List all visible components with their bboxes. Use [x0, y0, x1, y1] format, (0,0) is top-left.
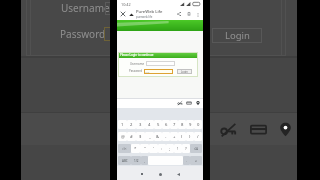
staticText: 2: [130, 122, 133, 128]
button[interactable]: ⌫: [190, 144, 202, 153]
button[interactable]: 6: [162, 120, 170, 129]
staticText: Username: [61, 1, 110, 15]
staticText: &: [156, 134, 160, 140]
button[interactable]: 0: [194, 120, 202, 129]
button[interactable]: Close: [119, 10, 127, 18]
staticText: @: [121, 134, 125, 140]
staticText: ABC: [122, 159, 128, 163]
staticText: Login: [181, 70, 188, 74]
button[interactable]: 3: [136, 120, 145, 129]
staticText: /: [197, 134, 199, 140]
staticText: pureweb.life: [136, 15, 153, 19]
button[interactable]: 4: [145, 120, 154, 129]
button[interactable]: Recents: [139, 171, 145, 177]
staticText: ⌫: [194, 147, 199, 150]
staticText: ): [189, 134, 191, 140]
button[interactable]: ?: [182, 144, 190, 153]
button[interactable]: Bookmark: [185, 10, 193, 18]
button[interactable]: 9: [186, 120, 194, 129]
staticText: 10:42: [121, 2, 131, 7]
button[interactable]: +: [170, 132, 178, 141]
button[interactable]: @: [118, 132, 127, 141]
button[interactable]: ': [149, 144, 158, 153]
staticText: Password: [129, 69, 143, 73]
staticText: PureWeb Life: [136, 9, 163, 15]
staticText: 4: [148, 122, 151, 128]
button[interactable]: ABC: [118, 156, 131, 165]
button[interactable]: &: [154, 132, 162, 141]
staticText: 1: [121, 122, 124, 128]
staticText: •••••: [145, 70, 150, 73]
staticText: ?: [185, 146, 187, 152]
button[interactable]: ;: [166, 144, 174, 153]
staticText: .: [186, 159, 187, 163]
button[interactable]: #: [127, 132, 136, 141]
button[interactable]: _: [145, 132, 154, 141]
staticText: Please Login to continue: [120, 53, 154, 57]
staticText: Username: [130, 62, 145, 66]
button[interactable]: ,: [141, 156, 148, 165]
staticText: 1/2: [134, 159, 139, 163]
button[interactable]: (: [178, 132, 186, 141]
staticText: ': [153, 146, 154, 152]
button[interactable]: Payment methods: [249, 120, 268, 139]
staticText: :: [161, 146, 163, 152]
staticText: *: [134, 146, 137, 152]
button[interactable]: $: [136, 132, 145, 141]
staticText: ↵: [195, 159, 198, 162]
button[interactable]: ": [140, 144, 149, 153]
button[interactable]: Passwords: [219, 120, 238, 139]
staticText: !: [177, 146, 179, 152]
staticText: =\<: [122, 147, 127, 151]
button[interactable]: Share: [175, 10, 183, 18]
button[interactable]: More options: [194, 11, 201, 18]
staticText: 7: [173, 122, 176, 128]
button[interactable]: Home: [157, 171, 163, 177]
button[interactable]: /: [194, 132, 202, 141]
button[interactable]: 5: [154, 120, 162, 129]
staticText: $: [139, 134, 142, 140]
button[interactable]: :: [158, 144, 166, 153]
staticText: ;: [169, 146, 171, 152]
staticText: Password: [60, 27, 106, 41]
button[interactable]: Back: [175, 171, 181, 177]
staticText: 3: [139, 122, 142, 128]
button[interactable]: Addresses: [195, 100, 201, 106]
staticText: (: [181, 134, 183, 140]
button[interactable]: 1: [118, 120, 127, 129]
staticText: 9: [189, 122, 192, 128]
button[interactable]: =\<: [118, 144, 131, 153]
button[interactable]: ): [186, 132, 194, 141]
staticText: ,: [144, 159, 145, 163]
staticText: #: [130, 134, 133, 140]
staticText: +: [173, 134, 176, 140]
button[interactable]: 8: [178, 120, 186, 129]
staticText: _: [149, 134, 151, 140]
button[interactable]: Addresses: [276, 120, 295, 139]
button[interactable]: !: [174, 144, 182, 153]
button[interactable]: ↵: [190, 156, 202, 165]
button[interactable]: Login: [177, 69, 192, 74]
staticText: 6: [165, 122, 168, 128]
button[interactable]: Login: [212, 28, 262, 43]
staticText: -: [165, 134, 167, 140]
button[interactable]: -: [162, 132, 170, 141]
button[interactable]: 1/2: [131, 156, 141, 165]
staticText: 8: [181, 122, 184, 128]
button[interactable]: *: [131, 144, 140, 153]
staticText: 0: [197, 122, 200, 128]
staticText: ": [144, 146, 146, 152]
button[interactable]: 2: [127, 120, 136, 129]
button[interactable]: Passwords: [177, 100, 183, 106]
button[interactable]: 7: [170, 120, 178, 129]
button[interactable]: Payment methods: [186, 100, 192, 106]
staticText: 5: [157, 122, 160, 128]
staticText: Login: [225, 29, 250, 42]
